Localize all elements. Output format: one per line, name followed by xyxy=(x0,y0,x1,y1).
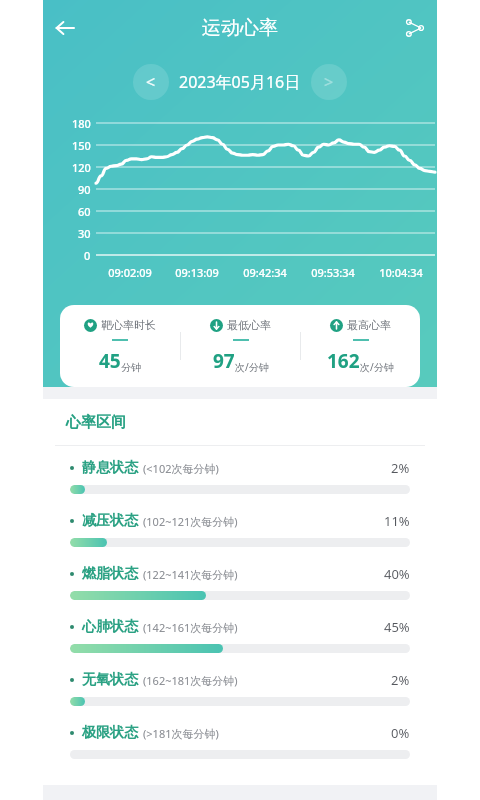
staticText: (122~141次每分钟) xyxy=(143,567,238,582)
staticText: 心率区间 xyxy=(66,413,126,432)
staticText: 2% xyxy=(391,459,410,477)
staticText: 最低心率 xyxy=(227,318,271,332)
staticText: < xyxy=(146,71,156,93)
button[interactable]: 静息状态 xyxy=(43,459,437,512)
staticText: 2023年05月16日 xyxy=(179,71,301,93)
button[interactable]: Previous day xyxy=(133,64,169,100)
staticText: 09:13:09 xyxy=(175,265,219,280)
staticText: 60 xyxy=(78,204,91,218)
staticText: 09:53:34 xyxy=(311,265,355,280)
button[interactable]: 极限状态 xyxy=(43,724,437,777)
staticText: 45 xyxy=(99,348,121,374)
staticText: 0 xyxy=(84,248,91,262)
staticText: 次/分钟 xyxy=(235,360,269,374)
staticText: < xyxy=(324,71,334,93)
staticText: (142~161次每分钟) xyxy=(143,620,238,635)
button[interactable]: 最低心率 xyxy=(181,305,300,387)
staticText: 09:42:34 xyxy=(243,265,287,280)
button[interactable]: Next day xyxy=(311,64,347,100)
staticText: 静息状态 xyxy=(82,459,138,477)
staticText: (>181次每分钟) xyxy=(143,726,219,741)
staticText: 最高心率 xyxy=(347,318,391,332)
staticText: 2% xyxy=(391,671,410,689)
staticText: 靶心率时长 xyxy=(101,318,156,332)
staticText: 150 xyxy=(72,138,91,152)
staticText: 分钟 xyxy=(121,361,141,374)
staticText: 120 xyxy=(72,160,91,174)
staticText: 心肺状态 xyxy=(82,618,138,636)
staticText: 减压状态 xyxy=(82,512,138,530)
staticText: 40% xyxy=(384,565,410,583)
staticText: (102~121次每分钟) xyxy=(143,514,238,529)
staticText: 极限状态 xyxy=(82,724,138,742)
button[interactable]: 靶心率时长 xyxy=(60,305,180,387)
staticText: 11% xyxy=(384,512,410,530)
staticText: 无氧状态 xyxy=(82,671,138,689)
staticText: 180 xyxy=(72,116,91,130)
staticText: 10:04:34 xyxy=(379,265,423,280)
button[interactable]: 燃脂状态 xyxy=(43,565,437,618)
staticText: 90 xyxy=(78,182,91,196)
button[interactable]: 最高心率 xyxy=(301,305,420,387)
button[interactable]: 心肺状态 xyxy=(43,618,437,671)
button[interactable]: Back xyxy=(43,6,87,50)
button[interactable]: Share xyxy=(393,6,437,50)
staticText: 162 xyxy=(327,348,360,374)
button[interactable]: 无氧状态 xyxy=(43,671,437,724)
staticText: > xyxy=(324,71,334,93)
staticText: 97 xyxy=(213,348,235,374)
staticText: (162~181次每分钟) xyxy=(143,673,238,688)
staticText: 30 xyxy=(78,226,91,240)
staticText: 运动心率 xyxy=(202,16,278,40)
staticText: 0% xyxy=(391,724,410,742)
staticText: (<102次每分钟) xyxy=(143,461,219,476)
staticText: 次/分钟 xyxy=(360,360,394,374)
staticText: 45% xyxy=(384,618,410,636)
staticText: 09:02:09 xyxy=(108,265,152,280)
staticText: 燃脂状态 xyxy=(82,565,138,583)
button[interactable]: 减压状态 xyxy=(43,512,437,565)
